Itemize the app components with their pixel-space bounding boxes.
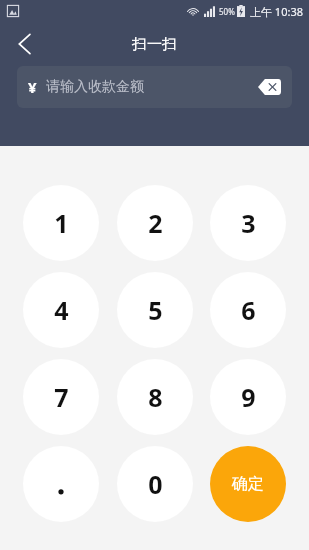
button[interactable]: 5 [117,272,193,348]
button[interactable]: 1 [23,185,99,261]
staticText: 9 [241,380,256,414]
staticText: 0 [148,467,163,501]
button[interactable]: 删除 [254,74,284,100]
staticText: 50% [219,6,235,17]
staticText: 7 [54,380,69,414]
staticText: 5 [148,293,163,327]
button[interactable]: 0 [117,446,193,522]
staticText: 6 [241,293,256,327]
staticText: 3 [241,206,256,240]
staticText: 确定 [232,474,264,494]
button[interactable]: 确定 [210,446,286,522]
button[interactable]: 3 [210,185,286,261]
staticText: 4 [54,293,69,327]
button[interactable]: ¥ [17,66,292,108]
button[interactable]: 6 [210,272,286,348]
staticText: 1 [54,206,69,240]
button[interactable]: 9 [210,359,286,435]
staticText: 8 [148,380,163,414]
button[interactable]: 2 [117,185,193,261]
staticText: 上午 10:38 [250,4,303,19]
staticText: ¥ [28,77,37,97]
button[interactable]: 7 [23,359,99,435]
button[interactable] [23,446,99,522]
staticText: 请输入收款金额 [46,78,144,96]
staticText: 2 [148,206,163,240]
button[interactable]: 4 [23,272,99,348]
button[interactable]: 8 [117,359,193,435]
staticText: 扫一扫 [132,35,177,54]
button[interactable]: 返回 [4,24,44,64]
